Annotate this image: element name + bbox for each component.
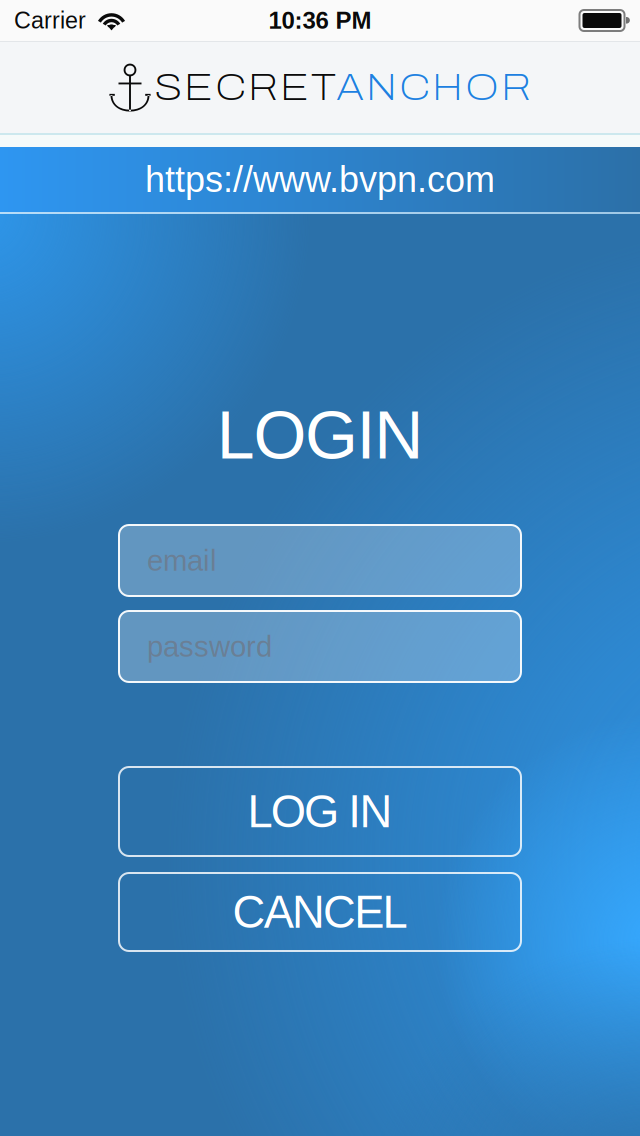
button[interactable]: LOG IN bbox=[119, 767, 521, 856]
staticText: CANCEL bbox=[232, 887, 407, 937]
staticText: https://www.bvpn.com bbox=[145, 159, 495, 200]
staticText: SECRET bbox=[154, 67, 336, 108]
button[interactable]: email bbox=[119, 525, 521, 596]
staticText: password bbox=[147, 630, 272, 663]
staticText: LOGIN bbox=[217, 397, 423, 473]
staticText: ANCHOR bbox=[336, 67, 531, 108]
staticText: LOG IN bbox=[247, 786, 392, 837]
button[interactable]: CANCEL bbox=[119, 873, 521, 951]
staticText: Carrier bbox=[14, 7, 86, 34]
staticText: email bbox=[147, 544, 217, 577]
staticText: 10:36 PM bbox=[268, 7, 371, 34]
button[interactable]: password bbox=[119, 611, 521, 682]
